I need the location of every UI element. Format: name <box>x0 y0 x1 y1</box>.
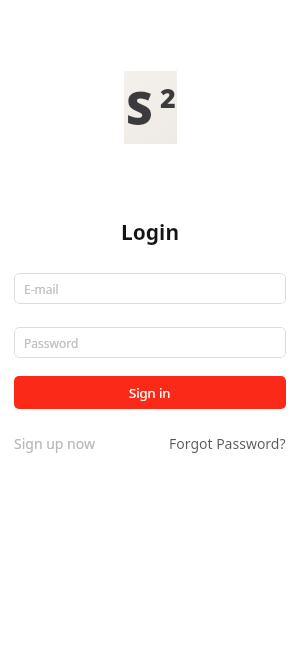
staticText: Login <box>0 218 300 247</box>
button[interactable]: Forgot Password? <box>169 434 286 453</box>
button[interactable]: Sign in <box>14 376 286 409</box>
staticText: 2 <box>160 79 176 116</box>
staticText: S <box>126 76 153 139</box>
staticText: E-mail <box>24 281 59 297</box>
other: App logo S squared <box>124 71 177 144</box>
staticText: Sign in <box>129 384 171 402</box>
button[interactable]: E-mail <box>14 273 286 304</box>
staticText: Sign up now <box>14 434 95 453</box>
staticText: Forgot Password? <box>169 434 286 453</box>
staticText: Password <box>24 335 79 351</box>
button[interactable]: Sign up now <box>14 434 95 453</box>
button[interactable]: Password <box>14 327 286 358</box>
